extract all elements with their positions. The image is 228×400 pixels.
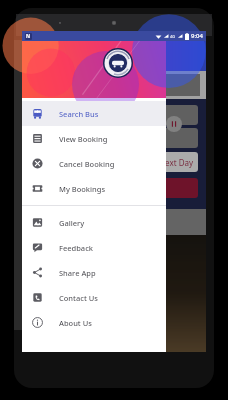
staticText: Next Day bbox=[159, 157, 194, 168]
staticText: 4G bbox=[170, 34, 176, 39]
staticText: Cancel Booking bbox=[59, 159, 115, 169]
staticText: 9:04 bbox=[191, 32, 203, 40]
button[interactable]: Feedback bbox=[22, 235, 166, 260]
staticText: About Us bbox=[59, 318, 92, 328]
staticText: Share App bbox=[59, 268, 96, 278]
staticText: Gallery bbox=[59, 218, 85, 228]
staticText: Contact Us bbox=[59, 293, 98, 303]
button[interactable]: View Booking bbox=[22, 126, 166, 151]
button[interactable]: Contact Us bbox=[22, 285, 166, 310]
button[interactable]: Cancel Booking bbox=[22, 151, 166, 176]
button[interactable]: Share App bbox=[22, 260, 166, 285]
staticText: My Bookings bbox=[59, 184, 106, 194]
staticText: N bbox=[26, 33, 31, 40]
button[interactable]: Search Bus bbox=[22, 101, 166, 126]
button[interactable]: Gallery bbox=[22, 210, 166, 235]
staticText: View Booking bbox=[59, 134, 108, 144]
button[interactable]: About Us bbox=[22, 310, 166, 335]
staticText: Feedback bbox=[59, 243, 94, 253]
button[interactable]: My Bookings bbox=[22, 176, 166, 201]
staticText: Search Bus bbox=[59, 109, 99, 119]
